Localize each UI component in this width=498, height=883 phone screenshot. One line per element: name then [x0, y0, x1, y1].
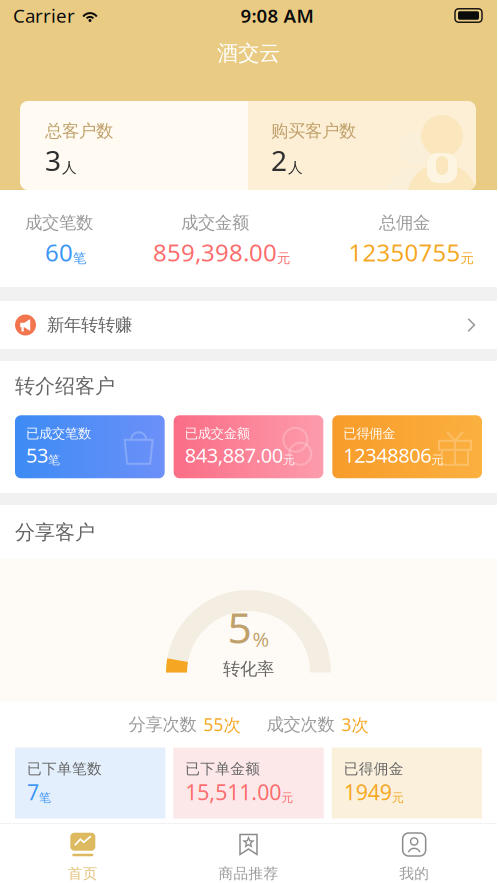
staticText: 12348806	[343, 442, 431, 468]
staticText: 人	[288, 159, 303, 177]
staticText: Carrier	[13, 3, 75, 28]
staticText: 2	[271, 142, 287, 179]
staticText: 首页	[68, 864, 98, 882]
staticText: 53	[26, 442, 48, 468]
staticText: 已成交笔数	[26, 425, 91, 442]
staticText: 1949	[344, 778, 392, 806]
staticText: 60	[45, 236, 73, 268]
staticText: 成交次数	[266, 714, 334, 735]
staticText: 成交笔数	[25, 212, 93, 233]
staticText: 已下单笔数	[27, 760, 102, 778]
staticText: 15,511.00	[185, 778, 281, 806]
staticText: 元	[277, 250, 290, 266]
staticText: 9:08 AM	[240, 3, 313, 28]
staticText: 已成交金额	[185, 425, 250, 442]
staticText: 元	[283, 452, 295, 467]
button[interactable]: 商品推荐	[166, 832, 331, 882]
button[interactable]: 我的	[331, 832, 497, 882]
staticText: 元	[281, 790, 293, 805]
staticText: 已得佣金	[344, 760, 404, 778]
staticText: 859,398.00	[153, 236, 277, 268]
staticText: 转介绍客户	[15, 374, 115, 398]
staticText: 3	[45, 142, 61, 179]
staticText: 分享次数	[128, 714, 196, 735]
staticText: 元	[392, 790, 404, 805]
staticText: 总佣金	[379, 212, 430, 233]
staticText: 成交金额	[181, 212, 249, 233]
staticText: 分享客户	[15, 520, 95, 545]
button[interactable]: 新年转转赚	[0, 301, 497, 349]
staticText: 7	[27, 778, 39, 806]
staticText: 我的	[399, 864, 429, 882]
staticText: 12350755	[348, 236, 460, 268]
staticText: 商品推荐	[218, 864, 278, 882]
button[interactable]: 首页	[0, 832, 166, 882]
staticText: 已下单金额	[185, 760, 260, 778]
staticText: 人	[62, 159, 77, 177]
staticText: 总客户数	[45, 120, 113, 142]
staticText: 新年转转赚	[47, 314, 132, 336]
staticText: 笔	[73, 250, 86, 266]
staticText: 酒交云	[217, 40, 280, 66]
staticText: 843,887.00	[185, 442, 283, 468]
staticText: 购买客户数	[271, 120, 356, 142]
staticText: 55次	[203, 713, 240, 736]
staticText: 笔	[39, 790, 51, 805]
staticText: 转化率	[223, 658, 274, 680]
staticText: 5	[227, 599, 251, 655]
staticText: %	[252, 626, 269, 652]
staticText: 已得佣金	[343, 425, 395, 442]
staticText: 笔	[48, 452, 60, 467]
staticText: 3次	[341, 713, 368, 736]
staticText: 元	[460, 250, 473, 266]
staticText: 元	[431, 452, 443, 467]
